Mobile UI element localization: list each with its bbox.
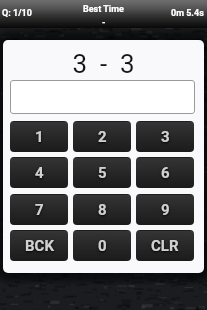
button[interactable]: BCK	[10, 230, 68, 261]
button[interactable]: 0	[73, 230, 131, 261]
staticText: 3	[161, 128, 170, 146]
button[interactable]: 2	[73, 121, 131, 152]
staticText: 1	[35, 128, 44, 146]
button[interactable]: 9	[136, 194, 194, 225]
button[interactable]: 3	[136, 121, 194, 152]
button[interactable]: 1	[10, 121, 68, 152]
staticText: 5	[98, 164, 107, 182]
staticText: Best Time	[83, 4, 124, 15]
staticText: CLR	[151, 237, 179, 255]
staticText: 8	[98, 201, 107, 219]
button[interactable]: 8	[73, 194, 131, 225]
staticText: 9	[161, 201, 170, 219]
button[interactable]: CLR	[136, 230, 194, 261]
staticText: BCK	[25, 237, 54, 255]
staticText: -	[102, 17, 106, 28]
staticText: 6	[161, 164, 170, 182]
button[interactable]	[10, 80, 195, 114]
button[interactable]: 5	[73, 157, 131, 188]
button[interactable]: 4	[10, 157, 68, 188]
staticText: 0	[98, 237, 107, 255]
staticText: 7	[35, 201, 44, 219]
button[interactable]: 6	[136, 157, 194, 188]
staticText: 2	[98, 128, 107, 146]
button[interactable]: Q: 1/10	[2, 8, 32, 19]
button[interactable]: 7	[10, 194, 68, 225]
staticText: 4	[35, 164, 44, 182]
staticText: 3 - 3	[3, 49, 204, 79]
staticText: 0m 5.4s	[171, 8, 204, 19]
